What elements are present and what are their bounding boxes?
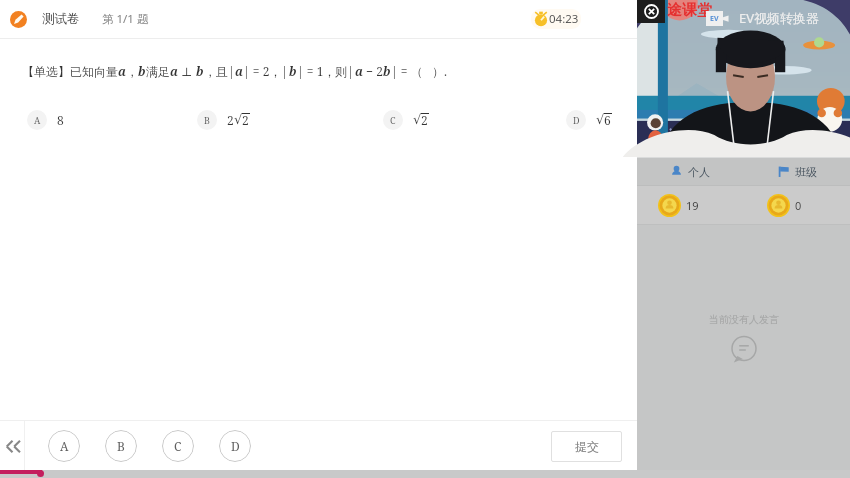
button[interactable]: C	[383, 109, 422, 131]
button[interactable]: 个人	[637, 158, 743, 185]
staticText: b	[383, 63, 391, 79]
staticText: b	[289, 63, 297, 79]
staticText: b	[196, 63, 204, 79]
staticText: C	[174, 438, 182, 454]
button[interactable]: A	[48, 430, 80, 462]
staticText: | = （ ）.	[391, 63, 448, 79]
staticText: | = 2，|	[243, 63, 289, 79]
staticText: b	[138, 63, 146, 79]
staticText: √	[596, 112, 605, 127]
staticText: 个人	[688, 165, 710, 179]
staticText: √	[234, 112, 243, 127]
staticText: 测试卷	[42, 11, 80, 27]
staticText: 第 1/1 题	[102, 11, 149, 27]
staticText: √	[413, 112, 422, 127]
button[interactable]: 班级	[743, 158, 850, 185]
button[interactable]: D	[219, 430, 251, 462]
staticText: 6	[604, 112, 611, 128]
staticText: 满足	[146, 64, 170, 79]
button[interactable]: 测试卷	[10, 0, 80, 38]
button[interactable]: Collapse panel	[0, 421, 24, 471]
button[interactable]: B	[105, 430, 137, 462]
staticText: − 2	[363, 63, 383, 79]
staticText: 2	[421, 112, 428, 128]
staticText: 【单选】已知向量	[22, 64, 118, 79]
button[interactable]: B	[197, 109, 243, 131]
staticText: a	[235, 63, 243, 79]
staticText: B	[204, 114, 210, 126]
staticText: 0	[795, 198, 802, 213]
staticText: A	[60, 438, 69, 454]
staticText: A	[34, 114, 41, 126]
staticText: D	[231, 438, 240, 454]
button[interactable]: Remaining time 04:23	[531, 9, 581, 29]
staticText: 提交	[575, 439, 599, 454]
staticText: B	[117, 438, 125, 454]
staticText: D	[573, 114, 580, 126]
staticText: 班级	[795, 165, 817, 179]
staticText: 8	[57, 112, 64, 128]
staticText: 2	[242, 112, 249, 128]
staticText: 04:23	[549, 11, 579, 27]
staticText: ，	[126, 64, 138, 79]
button[interactable]: Close	[637, 0, 665, 23]
staticText: EV视频转换器	[739, 9, 820, 27]
staticText: ⊥	[178, 63, 196, 79]
staticText: 19	[686, 198, 699, 213]
staticText: C	[390, 114, 396, 126]
button[interactable]: A	[27, 109, 64, 131]
staticText: 2	[227, 112, 234, 128]
staticText: | = 1，则|	[297, 63, 355, 79]
button[interactable]: C	[162, 430, 194, 462]
staticText: a	[355, 63, 363, 79]
staticText: EV	[710, 14, 719, 24]
button[interactable]: 提交	[551, 431, 622, 462]
staticText: a	[170, 63, 178, 79]
staticText: a	[118, 63, 126, 79]
button[interactable]: D	[566, 109, 605, 131]
staticText: ，且|	[204, 63, 235, 79]
staticText: 当前没有人发言	[709, 313, 779, 326]
staticText: 途课堂	[667, 1, 712, 20]
